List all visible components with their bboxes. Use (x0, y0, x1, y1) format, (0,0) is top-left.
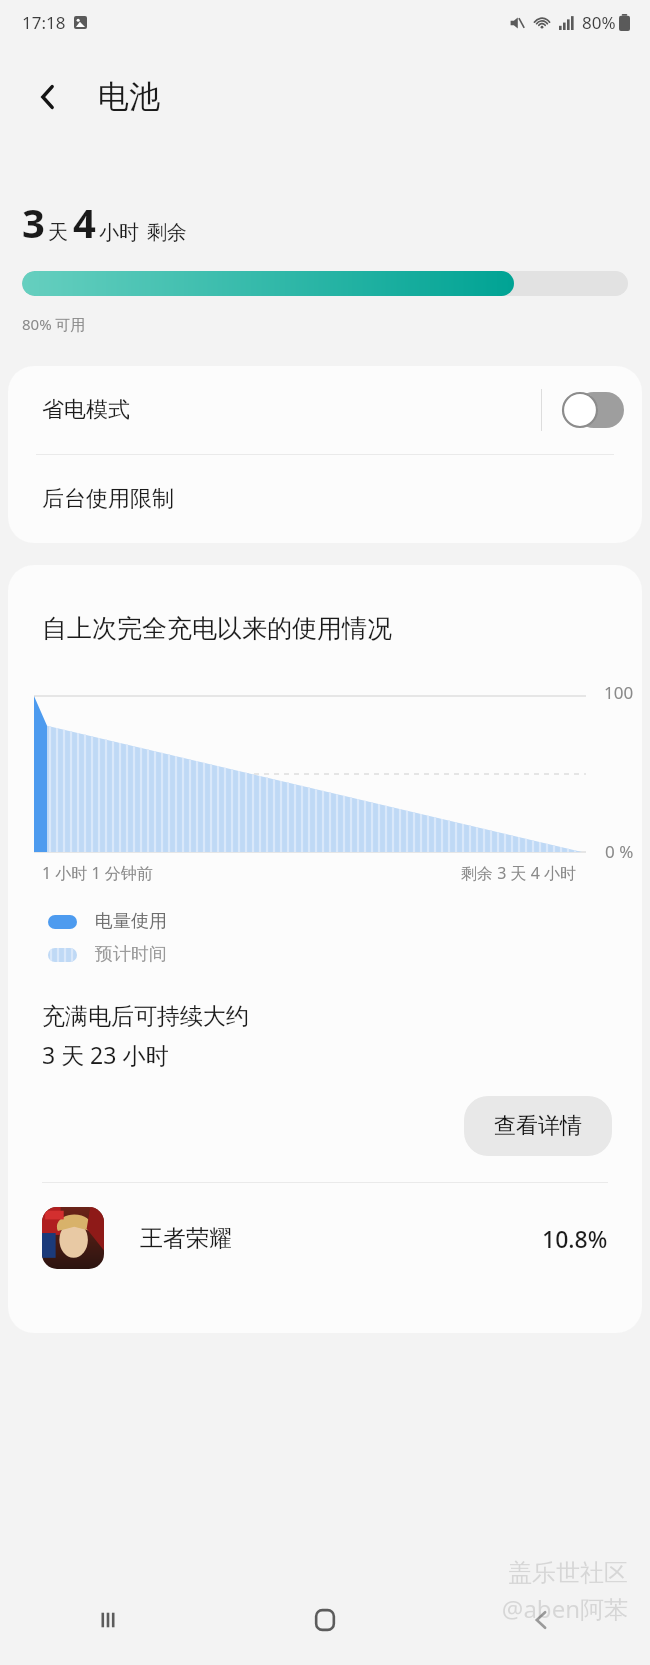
staticText: 100 (604, 681, 634, 704)
staticText: 3 (22, 195, 45, 249)
staticText: 王者荣耀 (140, 1224, 542, 1253)
staticText: 天 (48, 220, 68, 245)
staticText: 10.8% (542, 1223, 608, 1254)
button[interactable]: Back (433, 1575, 650, 1665)
staticText: 17:18 (22, 11, 66, 34)
staticText: 电量使用 (95, 910, 167, 933)
staticText: 省电模式 (42, 396, 541, 424)
button[interactable]: 省电模式 toggle (562, 392, 624, 428)
staticText: 盖乐世社区 (508, 1558, 628, 1588)
staticText: 小时 (99, 220, 139, 245)
button[interactable]: 查看详情 (464, 1096, 612, 1156)
staticText: 查看详情 (494, 1112, 582, 1140)
staticText: 电池 (98, 77, 160, 116)
staticText: 80% (582, 11, 616, 34)
button[interactable]: Back (22, 71, 74, 123)
button[interactable]: Home (216, 1575, 433, 1665)
staticText: 剩余 3 天 4 小时 (461, 862, 576, 884)
button[interactable]: 后台使用限制 (8, 455, 642, 543)
staticText: 后台使用限制 (42, 485, 174, 513)
button[interactable]: Recents (0, 1575, 216, 1665)
button[interactable]: 省电模式 (8, 366, 642, 454)
staticText: 4 (73, 195, 96, 249)
staticText: 1 小时 1 分钟前 (42, 862, 153, 884)
staticText: @aben阿苯 (501, 1592, 628, 1625)
staticText: 自上次完全充电以来的使用情况 (42, 613, 392, 644)
staticText: 80% 可用 (22, 314, 86, 334)
staticText: 预计时间 (95, 943, 167, 966)
staticText: 3 天 23 小时 (42, 1039, 169, 1070)
staticText: 充满电后可持续大约 (42, 1002, 249, 1031)
staticText: 剩余 (147, 220, 187, 245)
button[interactable]: 王者荣耀 (8, 1183, 642, 1293)
staticText: 0 % (605, 840, 634, 863)
